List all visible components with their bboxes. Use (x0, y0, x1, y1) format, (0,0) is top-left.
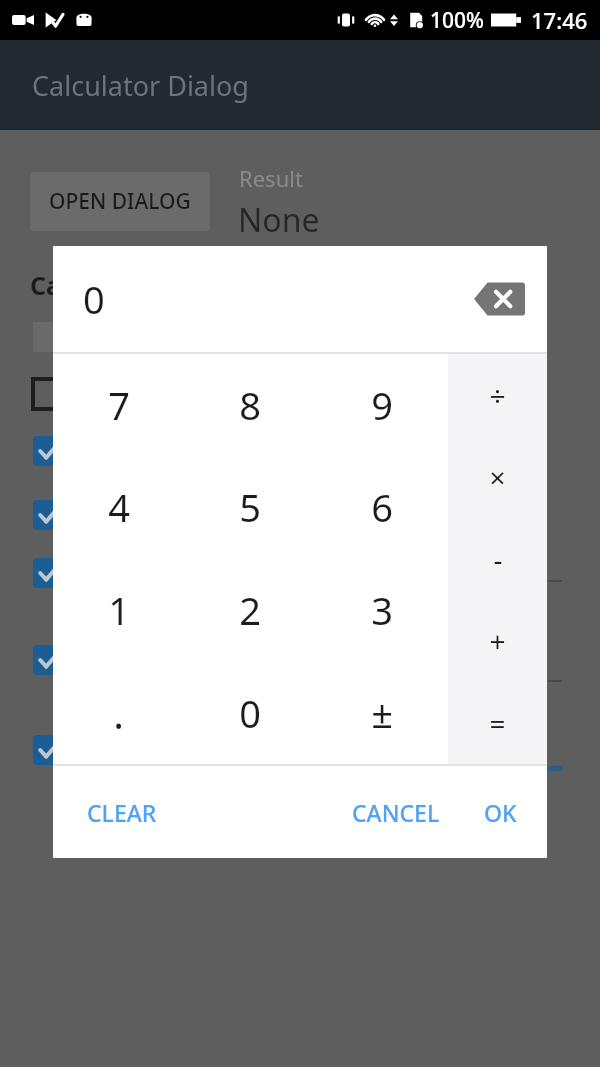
staticText: 0 (83, 273, 105, 325)
staticText: . (113, 686, 124, 740)
button[interactable]: CLEAR (71, 787, 173, 838)
staticText: CLEAR (87, 797, 157, 828)
staticText: Ca (30, 268, 62, 302)
staticText: 7 (108, 379, 130, 431)
button[interactable]: OPEN DIALOG (30, 172, 210, 231)
button[interactable]: - (448, 518, 547, 600)
staticText: 0 (239, 687, 261, 739)
staticText: 5 (239, 481, 261, 533)
button[interactable]: 4 (53, 456, 184, 558)
staticText: ÷ (489, 376, 506, 414)
button[interactable]: Backspace (473, 281, 525, 317)
staticText: 2 (239, 584, 261, 636)
button[interactable]: + (448, 600, 547, 682)
button[interactable]: 3 (316, 558, 448, 661)
button[interactable]: 5 (184, 456, 316, 558)
button[interactable]: ÷ (448, 354, 547, 436)
staticText: = (489, 704, 506, 742)
staticText: 6 (371, 481, 393, 533)
staticText: None (238, 198, 320, 242)
button[interactable]: 1 (53, 558, 184, 661)
staticText: CANCEL (352, 797, 440, 828)
staticText: 4 (108, 481, 130, 533)
button[interactable]: 8 (184, 354, 316, 456)
button[interactable]: OK (468, 787, 533, 838)
staticText: - (493, 540, 503, 578)
staticText: OK (484, 797, 517, 828)
button[interactable]: × (448, 436, 547, 518)
staticText: 8 (239, 379, 261, 431)
staticText: 9 (371, 379, 393, 431)
button[interactable]: . (53, 661, 184, 764)
staticText: OPEN DIALOG (49, 187, 191, 216)
staticText: + (489, 622, 506, 660)
button[interactable]: 9 (316, 354, 448, 456)
staticText: × (489, 458, 506, 496)
staticText: Result (239, 163, 303, 193)
button[interactable]: 6 (316, 456, 448, 558)
staticText: 3 (371, 584, 393, 636)
button[interactable]: CANCEL (336, 787, 456, 838)
staticText: ± (371, 687, 393, 739)
button[interactable]: = (448, 682, 547, 764)
staticText: Calculator Dialog (32, 67, 249, 104)
staticText: 1 (108, 584, 130, 636)
button[interactable]: 0 (184, 661, 316, 764)
button[interactable]: 2 (184, 558, 316, 661)
staticText: 100% (430, 6, 484, 35)
button[interactable]: ± (316, 661, 448, 764)
staticText: 17:46 (531, 5, 588, 35)
button[interactable]: 7 (53, 354, 184, 456)
